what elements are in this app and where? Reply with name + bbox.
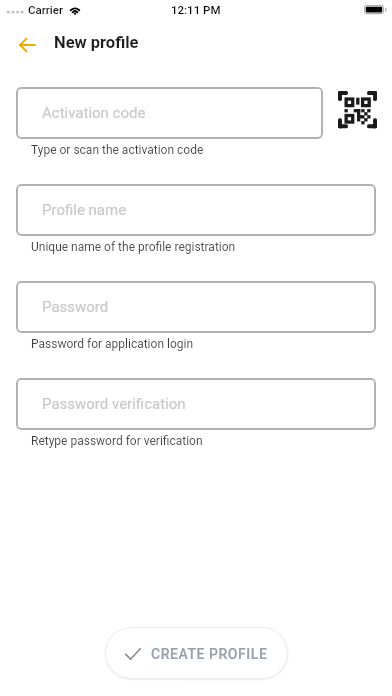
button[interactable]: Password verification [16, 378, 376, 430]
staticText: Activation code [42, 104, 146, 122]
button[interactable]: Password [16, 281, 376, 333]
staticText: Type or scan the activation code [31, 143, 204, 157]
button[interactable]: Activation code [16, 87, 323, 139]
staticText: Carrier [28, 3, 63, 16]
staticText: Profile name [42, 201, 127, 219]
staticText: New profile [54, 33, 139, 52]
staticText: Password verification [42, 395, 186, 413]
button[interactable]: Scan QR code [323, 87, 376, 139]
button[interactable]: Profile name [16, 184, 376, 236]
staticText: Unique name of the profile registration [31, 240, 236, 254]
staticText: Retype password for verification [31, 434, 203, 448]
staticText: CREATE PROFILE [151, 646, 268, 662]
staticText: Password [42, 298, 109, 316]
staticText: Password for application login [31, 337, 194, 351]
button[interactable]: CREATE PROFILE [105, 627, 288, 679]
staticText: 12:11 PM [171, 3, 221, 16]
button[interactable]: Back [8, 31, 46, 59]
